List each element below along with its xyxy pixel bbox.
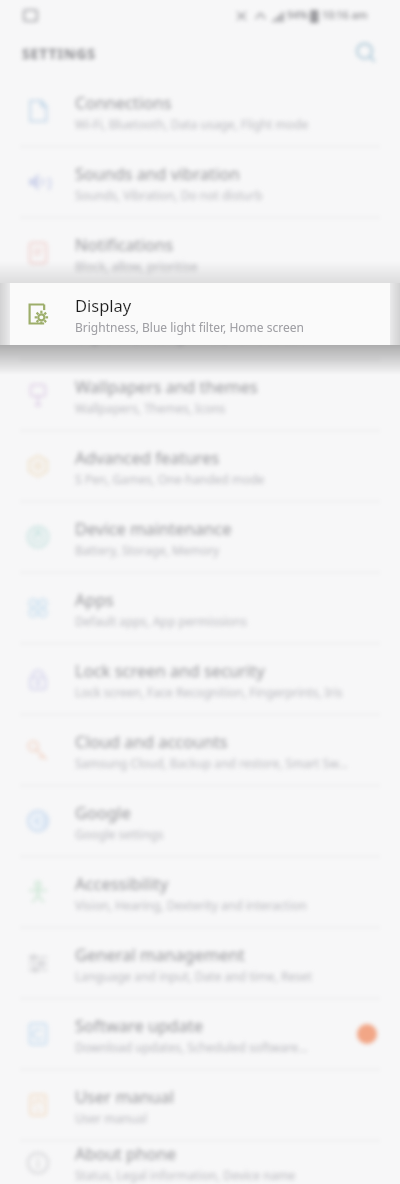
staticText: Brightness, Blue light filter, Home scre… (75, 329, 304, 345)
staticText: Lock screen and security (75, 659, 265, 681)
staticText: Connections (75, 91, 172, 113)
staticText: Wallpapers and themes (75, 375, 258, 397)
button[interactable]: Connections (0, 76, 400, 146)
staticText: Advanced features (75, 446, 220, 468)
button[interactable]: Software update (0, 999, 400, 1069)
button[interactable]: Wallpapers and themes (0, 360, 400, 430)
staticText: Battery, Storage, Memory (75, 542, 220, 558)
staticText: Wallpapers, Themes, Icons (75, 400, 226, 416)
staticText: Sounds, Vibration, Do not disturb (75, 187, 263, 203)
staticText: Apps (75, 588, 114, 610)
staticText: Samsung Cloud, Backup and restore, Smart… (75, 755, 348, 771)
button[interactable]: Accessibility (0, 857, 400, 927)
button[interactable]: Search (354, 41, 378, 65)
staticText: Google settings (75, 826, 164, 842)
staticText: 10:16 am (322, 8, 368, 22)
staticText: About phone (75, 1142, 176, 1164)
button[interactable]: Apps (0, 573, 400, 643)
staticText: Default apps, App permissions (75, 613, 247, 629)
button[interactable]: General management (0, 928, 400, 998)
staticText: Brightness, Blue light filter, Home scre… (75, 319, 304, 335)
button[interactable]: Advanced features (0, 431, 400, 501)
staticText: Status, Legal information, Device name (75, 1167, 296, 1183)
staticText: Software update (75, 1014, 203, 1036)
staticText: User manual (75, 1110, 147, 1126)
button[interactable]: Device maintenance (0, 502, 400, 572)
button[interactable]: Notifications (0, 218, 400, 288)
staticText: Accessibility (75, 872, 169, 894)
staticText: Google (75, 801, 131, 823)
button[interactable]: Display (10, 283, 390, 345)
staticText: Vision, Hearing, Dexterity and interacti… (75, 897, 307, 913)
staticText: General management (75, 943, 245, 965)
staticText: Lock screen, Face Recognition, Fingerpri… (75, 684, 343, 700)
staticText: Sounds and vibration (75, 162, 240, 184)
staticText: SETTINGS (22, 44, 96, 63)
button[interactable]: User manual (0, 1070, 400, 1140)
button[interactable]: Sounds and vibration (0, 147, 400, 217)
staticText: Display (75, 294, 132, 316)
staticText: Download updates, Scheduled software… (75, 1039, 308, 1055)
staticText: S Pen, Games, One-handed mode (75, 471, 265, 487)
staticText: User manual (75, 1085, 174, 1107)
button[interactable]: Cloud and accounts (0, 715, 400, 785)
button[interactable]: Google (0, 786, 400, 856)
staticText: Device maintenance (75, 517, 232, 539)
staticText: Wi-Fi, Bluetooth, Data usage, Flight mod… (75, 116, 309, 132)
staticText: Block, allow, prioritise (75, 258, 198, 274)
staticText: Cloud and accounts (75, 730, 228, 752)
button[interactable]: Display (0, 289, 400, 359)
staticText: Language and input, Date and time, Reset (75, 968, 313, 984)
staticText: Display (75, 304, 132, 326)
button[interactable]: Lock screen and security (0, 644, 400, 714)
staticText: Notifications (75, 233, 174, 255)
button[interactable]: About phone (0, 1141, 400, 1184)
staticText: 94% (287, 8, 308, 22)
